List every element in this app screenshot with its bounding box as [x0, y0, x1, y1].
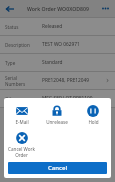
staticText: Cancel	[48, 164, 68, 172]
button[interactable]: Hold	[75, 102, 111, 127]
staticText: Cancel Work Order	[8, 146, 35, 158]
staticText: PRE12048, PRE12049	[42, 77, 90, 84]
staticText: Other	[5, 96, 18, 102]
button[interactable]: More options	[100, 3, 111, 14]
staticText: Work Order WO0XOD809	[27, 5, 89, 12]
button[interactable]: Type	[0, 54, 115, 71]
staticText: MFG SER LOT PRE1109	[42, 95, 93, 102]
staticText: Standard	[42, 59, 63, 66]
staticText: Serial Numbers	[5, 75, 38, 87]
button[interactable]: Other	[0, 90, 115, 107]
staticText: TEST WO 062971	[42, 41, 80, 48]
button[interactable]: Serial Numbers	[0, 72, 115, 89]
staticText: Unrelease	[46, 119, 68, 125]
button[interactable]: Description	[0, 36, 115, 53]
staticText: Status	[5, 24, 19, 30]
staticText: E-Mail	[15, 119, 29, 125]
button[interactable]: Cancel	[8, 162, 107, 174]
button[interactable]: Unrelease	[39, 102, 75, 127]
staticText: Type	[5, 60, 16, 66]
button[interactable]: Back	[4, 3, 15, 14]
staticText: Description	[5, 42, 30, 48]
staticText: Released	[42, 23, 63, 30]
button[interactable]: Status	[0, 18, 115, 35]
button[interactable]: Cancel Work Order	[4, 129, 39, 160]
staticText: Hold	[88, 119, 99, 125]
button[interactable]: E-Mail	[4, 102, 39, 127]
